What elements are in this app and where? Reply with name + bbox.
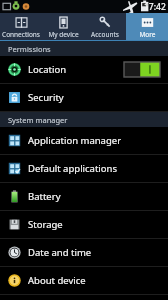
button[interactable]: Location [0,56,168,83]
button[interactable]: Date and time [0,239,168,266]
staticText: Battery [28,190,61,203]
staticText: 17:42 [144,1,166,13]
staticText: Application manager [28,134,122,147]
button[interactable]: About device [0,267,168,294]
staticText: Connections [2,30,40,39]
staticText: More [139,30,156,39]
button[interactable]: Accounts [84,13,126,40]
staticText: Default applications [28,162,117,175]
button[interactable]: Security [0,84,168,111]
button[interactable]: Battery [0,183,168,210]
button[interactable]: Connections [0,13,42,40]
staticText: Storage [28,218,63,231]
button[interactable]: My device [42,13,84,40]
button[interactable]: Application manager [0,127,168,154]
staticText: System manager [8,115,68,125]
button[interactable]: Storage [0,211,168,238]
staticText: Accounts [91,30,119,39]
button[interactable]: More [126,13,168,40]
staticText: Permissions [8,44,51,54]
button[interactable]: Location on [124,62,160,77]
staticText: Location [28,63,67,76]
staticText: Security [28,91,64,104]
staticText: About device [28,274,86,287]
staticText: My device [48,30,79,39]
staticText: Date and time [28,246,92,259]
button[interactable]: Default applications [0,155,168,182]
